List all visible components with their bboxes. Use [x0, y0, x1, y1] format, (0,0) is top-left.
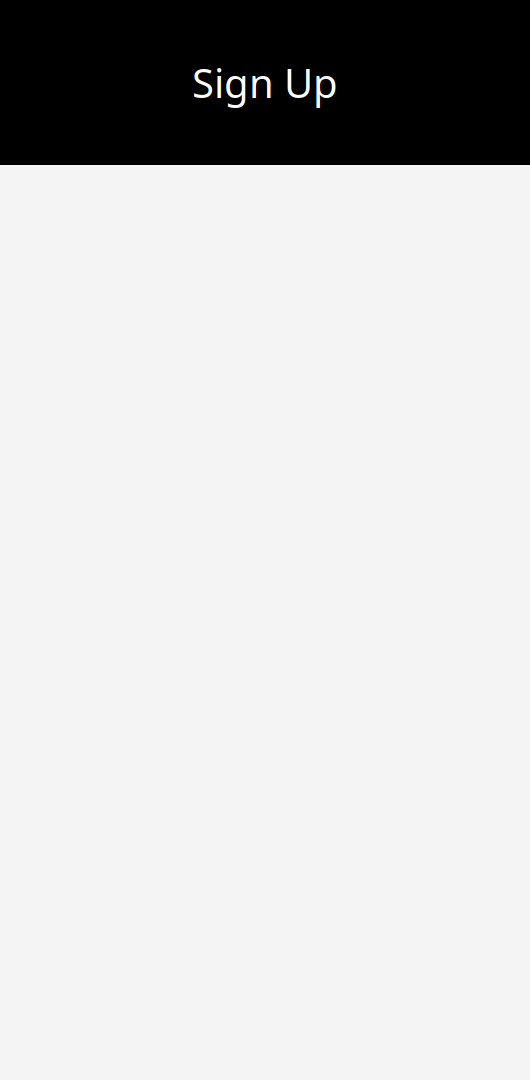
staticText: Sign Up — [192, 55, 338, 110]
